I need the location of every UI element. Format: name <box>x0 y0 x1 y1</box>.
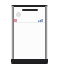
button[interactable]: Profile <box>16 12 21 17</box>
button[interactable]: Phone device mockup <box>11 5 48 64</box>
button[interactable]: Status <box>38 19 43 22</box>
